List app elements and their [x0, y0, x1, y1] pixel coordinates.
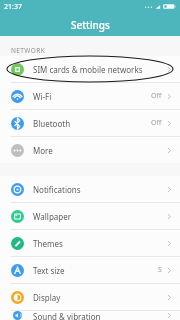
button[interactable]: More: [0, 137, 180, 163]
button[interactable]: Wallpaper: [0, 203, 180, 229]
button[interactable]: Themes: [0, 230, 180, 256]
button[interactable]: Notifications: [0, 176, 180, 202]
staticText: More: [33, 145, 167, 156]
staticText: Wi-Fi: [33, 91, 151, 102]
staticText: Wallpaper: [33, 211, 167, 222]
staticText: Notifications: [33, 184, 167, 195]
staticText: NETWORK: [11, 46, 46, 55]
staticText: Text size: [33, 265, 158, 276]
staticText: Settings: [71, 18, 110, 32]
staticText: Sound & vibration: [33, 311, 167, 320]
button[interactable]: Display: [0, 284, 180, 310]
staticText: Off: [151, 91, 162, 101]
staticText: S: [158, 265, 162, 275]
button[interactable]: Wi-Fi: [0, 83, 180, 109]
button[interactable]: Text size: [0, 257, 180, 283]
button[interactable]: Sound & vibration: [0, 311, 180, 320]
staticText: Off: [151, 118, 162, 128]
staticText: Display: [33, 292, 167, 303]
staticText: 21:37: [4, 2, 22, 12]
staticText: SIM cards & mobile networks: [33, 64, 167, 75]
staticText: Bluetooth: [33, 118, 151, 129]
staticText: Themes: [33, 238, 167, 249]
button[interactable]: Bluetooth: [0, 110, 180, 136]
button[interactable]: SIM cards & mobile networks: [0, 56, 180, 82]
